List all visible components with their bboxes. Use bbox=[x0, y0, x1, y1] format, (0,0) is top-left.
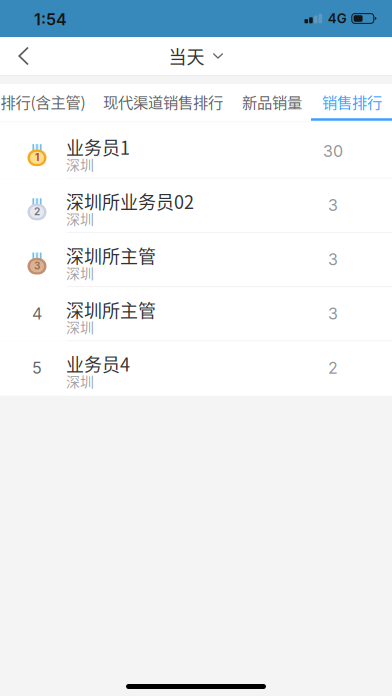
staticText: 3 bbox=[328, 250, 338, 269]
button[interactable]: 当天 bbox=[158, 37, 233, 75]
staticText: 3 bbox=[328, 196, 338, 215]
staticText: 深圳所业务员02 bbox=[66, 188, 194, 214]
staticText: 1:54 bbox=[34, 10, 67, 29]
staticText: 深圳 bbox=[66, 262, 94, 283]
staticText: 深圳所主管 bbox=[66, 242, 156, 268]
button[interactable]: 销售排行 bbox=[322, 80, 382, 123]
staticText: 销售排行 bbox=[322, 90, 382, 113]
button[interactable]: Back bbox=[0, 37, 62, 75]
button[interactable]: 2 bbox=[0, 179, 392, 233]
button[interactable]: 新品销量 bbox=[242, 80, 302, 123]
staticText: 排行(含主管) bbox=[0, 90, 85, 113]
staticText: 1 bbox=[35, 151, 39, 163]
button[interactable]: 4 bbox=[0, 287, 392, 341]
staticText: 5 bbox=[32, 358, 42, 378]
staticText: 2 bbox=[34, 205, 40, 218]
staticText: 3 bbox=[328, 304, 338, 323]
staticText: 深圳 bbox=[66, 371, 94, 391]
staticText: 业务员1 bbox=[66, 134, 130, 160]
staticText: 深圳 bbox=[66, 208, 94, 228]
staticText: 3 bbox=[34, 260, 40, 272]
button[interactable]: 1 bbox=[0, 124, 392, 179]
staticText: 深圳 bbox=[66, 317, 94, 337]
staticText: 4 bbox=[32, 304, 42, 323]
staticText: 深圳 bbox=[66, 154, 94, 174]
button[interactable]: 3 bbox=[0, 233, 392, 287]
button[interactable]: 5 bbox=[0, 341, 392, 395]
button[interactable]: 现代渠道销售排行 bbox=[103, 80, 223, 123]
staticText: 深圳所主管 bbox=[66, 296, 156, 323]
staticText: 现代渠道销售排行 bbox=[103, 90, 223, 113]
staticText: 业务员4 bbox=[66, 351, 130, 377]
button[interactable]: 排行(含主管) bbox=[0, 80, 85, 123]
staticText: 30 bbox=[323, 141, 343, 161]
staticText: 当天 bbox=[168, 43, 204, 69]
staticText: 新品销量 bbox=[242, 90, 302, 113]
staticText: 2 bbox=[328, 358, 338, 378]
staticText: 4G bbox=[328, 10, 347, 26]
